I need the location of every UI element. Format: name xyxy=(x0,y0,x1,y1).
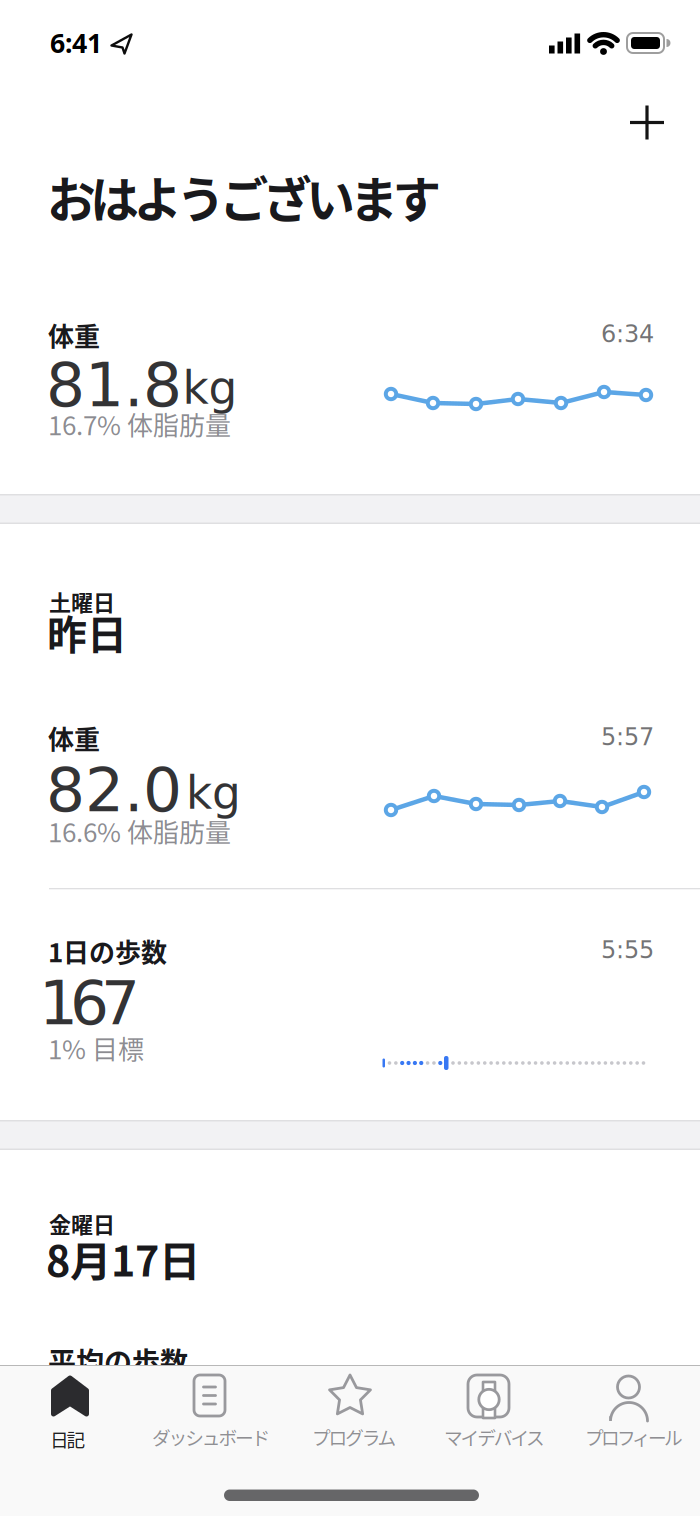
staticText: 8月17日 xyxy=(46,1229,200,1288)
staticText: 16.7% 体脂肪量 xyxy=(48,405,231,443)
staticText: 土曜日 xyxy=(49,585,115,617)
staticText: 5:55 xyxy=(601,936,654,964)
staticText: 平均の歩数 xyxy=(48,1341,188,1381)
staticText: 金曜日 xyxy=(49,1207,115,1239)
staticText: ダッシュボード xyxy=(152,1423,271,1450)
staticText: 体重 xyxy=(48,719,100,757)
staticText: プロフィール xyxy=(585,1423,683,1450)
staticText: 日記 xyxy=(50,1425,86,1452)
staticText: プログラム xyxy=(312,1423,396,1450)
staticText: 81.8 xyxy=(46,349,182,421)
staticText: kg xyxy=(186,767,241,819)
staticText: 16.6% 体脂肪量 xyxy=(48,812,231,850)
staticText: 1% 目標 xyxy=(48,1029,144,1067)
staticText: 1日の歩数 xyxy=(48,932,167,970)
staticText: 82.0 xyxy=(46,754,182,826)
staticText: 昨日 xyxy=(47,603,127,661)
staticText: マイデバイス xyxy=(444,1423,545,1450)
staticText: 5:57 xyxy=(601,723,654,751)
staticText: 6:41 xyxy=(50,25,102,60)
staticText: kg xyxy=(182,362,237,414)
staticText: 6:34 xyxy=(601,320,654,348)
staticText: おはようございます xyxy=(47,161,442,232)
staticText: 167 xyxy=(39,967,140,1039)
staticText: 体重 xyxy=(48,316,100,354)
